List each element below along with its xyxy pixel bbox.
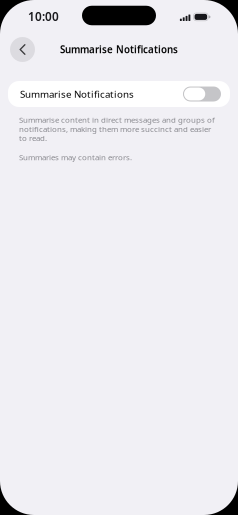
staticText: Summarise Notifications [20,87,134,101]
staticText: Summaries may contain errors. [19,153,132,162]
button[interactable]: Summarise Notifications [8,81,230,107]
staticText: Summarise Notifications [60,43,178,56]
button[interactable]: Back [7,34,38,65]
staticText: 10:00 [28,8,59,24]
staticText: Summarise content in direct messages and… [19,115,215,143]
